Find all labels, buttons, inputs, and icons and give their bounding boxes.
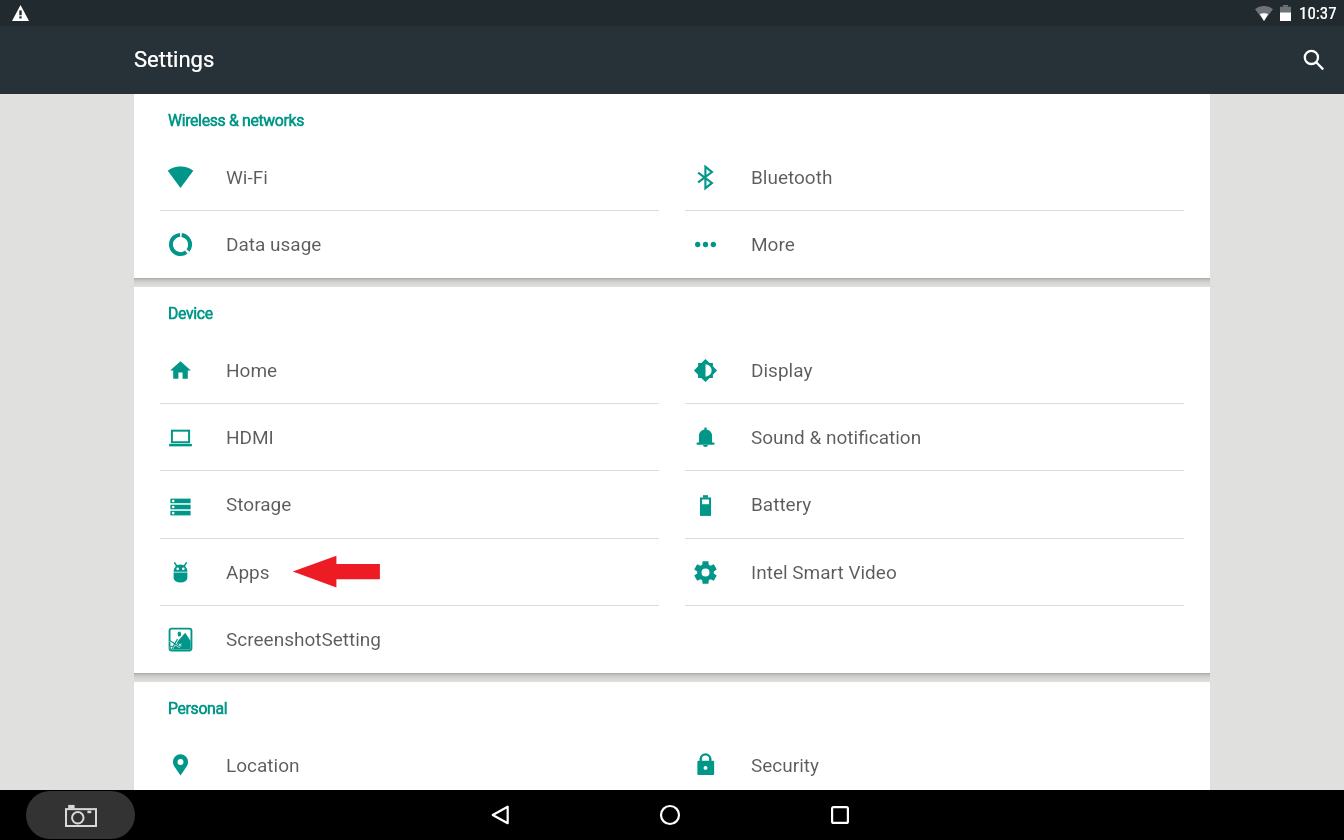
- staticText: Battery: [751, 493, 812, 515]
- staticText: More: [751, 233, 795, 255]
- button[interactable]: Location: [160, 732, 659, 790]
- button[interactable]: Data usage: [160, 211, 659, 278]
- staticText: Device: [168, 304, 213, 323]
- button[interactable]: Display: [685, 337, 1184, 404]
- button[interactable]: Sound & notification: [685, 404, 1184, 471]
- staticText: Personal: [168, 699, 228, 718]
- staticText: Data usage: [226, 233, 322, 255]
- button[interactable]: Bluetooth: [685, 144, 1184, 211]
- button[interactable]: Recents: [812, 790, 868, 840]
- button[interactable]: Home: [642, 790, 698, 840]
- staticText: Storage: [226, 493, 292, 515]
- staticText: Apps: [226, 561, 270, 583]
- button[interactable]: Wi-Fi: [160, 144, 659, 211]
- button[interactable]: Intel Smart Video: [685, 539, 1184, 606]
- button[interactable]: HDMI: [160, 404, 659, 471]
- button[interactable]: ScreenshotSetting: [160, 606, 659, 673]
- button[interactable]: Search: [1286, 32, 1342, 88]
- staticText: Wi-Fi: [226, 166, 268, 188]
- button[interactable]: Back: [472, 790, 528, 840]
- button[interactable]: Security: [685, 732, 1184, 790]
- button[interactable]: Apps: [160, 539, 659, 606]
- staticText: 10:37: [1299, 3, 1337, 23]
- staticText: Intel Smart Video: [751, 561, 897, 583]
- staticText: Display: [751, 359, 813, 381]
- staticText: Settings: [134, 47, 215, 73]
- staticText: Location: [226, 754, 300, 776]
- staticText: Security: [751, 754, 820, 776]
- staticText: Sound & notification: [751, 426, 922, 448]
- button[interactable]: Battery: [685, 471, 1184, 539]
- button[interactable]: Storage: [160, 471, 659, 539]
- staticText: Bluetooth: [751, 166, 833, 188]
- staticText: Home: [226, 359, 278, 381]
- button[interactable]: More: [685, 211, 1184, 278]
- staticText: Wireless & networks: [168, 111, 305, 130]
- staticText: HDMI: [226, 426, 274, 448]
- button[interactable]: Screenshot: [26, 791, 135, 839]
- staticText: ScreenshotSetting: [226, 628, 382, 650]
- button[interactable]: Home: [160, 337, 659, 404]
